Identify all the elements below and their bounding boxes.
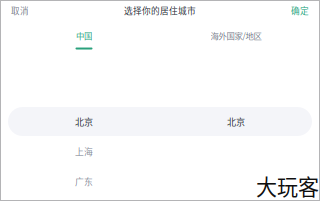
staticText: 北京 <box>75 115 93 128</box>
button[interactable]: 上海 <box>0 136 320 166</box>
staticText: 北京 <box>227 115 245 128</box>
staticText: 大玩客 <box>256 170 319 201</box>
button[interactable]: 海外国家/地区 <box>160 30 312 53</box>
staticText: 选择你的居住城市 <box>124 4 196 17</box>
button[interactable]: 中国 <box>8 30 160 53</box>
staticText: 中国 <box>76 29 92 42</box>
staticText: 上海 <box>75 145 93 158</box>
staticText: 广东 <box>75 175 93 188</box>
button[interactable]: 取消 <box>0 1 40 19</box>
staticText: 确定 <box>291 4 309 17</box>
staticText: 取消 <box>11 4 29 17</box>
staticText: 海外国家/地区 <box>210 29 261 42</box>
button[interactable]: 确定 <box>280 1 320 19</box>
button[interactable]: 北京 <box>0 106 320 136</box>
button[interactable]: 广东 <box>0 166 320 196</box>
